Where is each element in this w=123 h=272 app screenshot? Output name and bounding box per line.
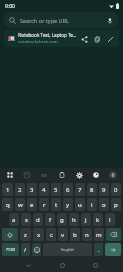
button[interactable]: Edit	[105, 34, 115, 44]
button[interactable]: i	[87, 198, 97, 211]
button[interactable]: y	[63, 198, 73, 211]
button[interactable]: e	[27, 198, 37, 211]
button[interactable]: n	[82, 228, 92, 241]
button[interactable]: Shift	[2, 228, 18, 241]
button[interactable]: Emoji	[32, 243, 41, 256]
staticText: z	[24, 231, 27, 239]
staticText: 2	[18, 186, 22, 194]
button[interactable]: Back	[22, 259, 34, 271]
button[interactable]: p	[111, 198, 121, 211]
button[interactable]: Menu	[4, 169, 16, 181]
button[interactable]: s	[21, 213, 31, 226]
button[interactable]: o	[99, 198, 109, 211]
button[interactable]: 5	[51, 183, 61, 196]
staticText: i	[91, 201, 93, 209]
staticText: x	[37, 231, 41, 239]
staticText: v	[61, 231, 65, 239]
button[interactable]: w	[15, 198, 25, 211]
button[interactable]: Enter	[105, 243, 121, 256]
button[interactable]: j	[81, 213, 91, 226]
button[interactable]: English	[43, 243, 92, 256]
staticText: /	[24, 246, 27, 253]
button[interactable]: m	[94, 228, 104, 241]
staticText: r	[43, 201, 46, 209]
button[interactable]: b	[70, 228, 80, 241]
button[interactable]: l	[105, 213, 115, 226]
button[interactable]: 1	[2, 183, 13, 196]
button[interactable]: Copy	[92, 34, 102, 44]
button[interactable]: Voice search	[105, 16, 114, 25]
button[interactable]: z	[20, 228, 31, 241]
button[interactable]: v	[58, 228, 68, 241]
staticText: w	[18, 201, 23, 209]
button[interactable]: 3	[27, 183, 37, 196]
button[interactable]: k	[93, 213, 103, 226]
button[interactable]: r	[39, 198, 49, 211]
staticText: c	[50, 231, 53, 239]
button[interactable]: 9	[99, 183, 109, 196]
staticText: q	[6, 201, 10, 209]
button[interactable]: Notebook Test, Laptop Test …	[4, 30, 119, 47]
staticText: g	[60, 216, 64, 224]
staticText: 7	[78, 186, 82, 194]
button[interactable]: 2	[15, 183, 25, 196]
button[interactable]: 4	[39, 183, 49, 196]
staticText: English	[61, 247, 74, 252]
staticText: h	[72, 216, 76, 224]
staticText: u	[78, 201, 82, 209]
staticText: t	[55, 201, 58, 209]
button[interactable]: Settings	[73, 169, 85, 181]
button[interactable]: Theme	[90, 169, 102, 181]
button[interactable]: Share	[79, 34, 89, 44]
staticText: a	[12, 216, 16, 224]
staticText: m	[96, 231, 102, 239]
staticText: ?123	[6, 247, 16, 253]
button[interactable]: GIF	[38, 169, 50, 181]
staticText: 4	[42, 186, 46, 194]
staticText: b	[73, 231, 77, 239]
staticText: y	[66, 201, 70, 209]
staticText: 0	[114, 186, 118, 194]
staticText: p	[114, 201, 118, 209]
button[interactable]: Clipboard	[56, 169, 68, 181]
staticText: 9:00	[5, 3, 15, 10]
staticText: .	[98, 246, 100, 253]
button[interactable]: Backspace	[106, 228, 121, 241]
button[interactable]: d	[33, 213, 43, 226]
button[interactable]: Voice input	[107, 169, 119, 181]
button[interactable]: h	[69, 213, 79, 226]
staticText: 6	[66, 186, 70, 194]
button[interactable]: Search or type URL	[4, 12, 119, 28]
staticText: l	[109, 216, 111, 224]
staticText: j	[85, 216, 87, 224]
staticText: Notebook Test, Laptop Test …	[18, 32, 77, 38]
staticText: notebookcheck.com	[18, 39, 58, 45]
staticText: d	[36, 216, 40, 224]
button[interactable]: 8	[87, 183, 97, 196]
button[interactable]: a	[9, 213, 19, 226]
button[interactable]: Home	[56, 259, 68, 271]
button[interactable]: x	[33, 228, 44, 241]
button[interactable]: 6	[63, 183, 73, 196]
staticText: e	[30, 201, 34, 209]
staticText: 5	[54, 186, 58, 194]
button[interactable]: Recent apps	[89, 259, 101, 271]
button[interactable]: /	[21, 243, 30, 256]
staticText: o	[102, 201, 106, 209]
button[interactable]: c	[46, 228, 56, 241]
staticText: k	[96, 216, 100, 224]
button[interactable]: ?123	[2, 243, 19, 256]
button[interactable]: Stickers	[21, 169, 33, 181]
button[interactable]: g	[57, 213, 67, 226]
button[interactable]: u	[75, 198, 85, 211]
button[interactable]: f	[45, 213, 55, 226]
staticText: 1	[6, 186, 10, 194]
staticText: GIF	[41, 173, 47, 178]
button[interactable]: q	[2, 198, 13, 211]
button[interactable]: t	[51, 198, 61, 211]
button[interactable]: 7	[75, 183, 85, 196]
staticText: n	[85, 231, 89, 239]
button[interactable]: 0	[111, 183, 121, 196]
staticText: 3	[30, 186, 34, 194]
button[interactable]: .	[94, 243, 103, 256]
